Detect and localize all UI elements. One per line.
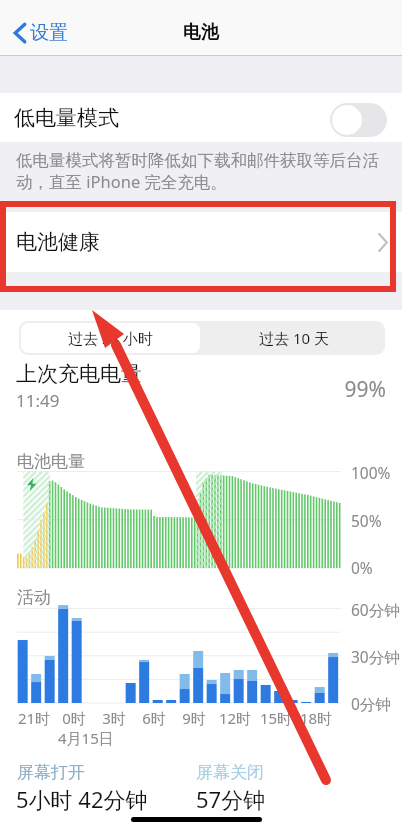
staticText: 屏幕打开: [17, 762, 85, 783]
staticText: 低电量模式将暂时降低如下载和邮件获取等后台活: [16, 150, 379, 171]
staticText: 电池: [183, 21, 219, 44]
staticText: 57分钟: [196, 784, 266, 814]
staticText: 9时: [164, 708, 224, 728]
staticText: 0时: [44, 708, 104, 728]
staticText: 12时: [205, 708, 265, 728]
staticText: 15时: [246, 708, 306, 728]
staticText: 0%: [351, 557, 373, 578]
staticText: 5小时 42分钟: [16, 784, 148, 814]
staticText: 6时: [124, 708, 184, 728]
staticText: 99%: [300, 375, 386, 404]
staticText: 上次充电电量: [16, 361, 142, 387]
button[interactable]: 低电量模式: [0, 93, 402, 142]
staticText: 低电量模式: [14, 105, 119, 131]
staticText: 0分钟: [351, 693, 391, 714]
staticText: 3时: [84, 708, 144, 728]
staticText: 过去 24 小时: [68, 328, 153, 348]
staticText: 过去 10 天: [259, 328, 329, 348]
staticText: 21时: [4, 708, 64, 728]
staticText: 设置: [30, 21, 68, 45]
staticText: 100%: [351, 462, 391, 483]
staticText: 4月15日: [58, 728, 114, 748]
staticText: 动，直至 iPhone 完全充电。: [16, 170, 228, 193]
button[interactable]: 过去 10 天: [202, 321, 385, 355]
staticText: 30分钟: [351, 646, 400, 667]
staticText: 屏幕关闭: [196, 762, 264, 783]
button[interactable]: 过去 24 小时: [21, 323, 200, 353]
button[interactable]: 低电量模式开关: [330, 103, 387, 137]
staticText: 50%: [351, 510, 382, 531]
button[interactable]: 电池健康: [0, 212, 402, 272]
staticText: 11:49: [16, 389, 60, 412]
staticText: 电池电量: [17, 451, 85, 472]
button[interactable]: 返回设置: [13, 21, 68, 45]
staticText: 活动: [17, 587, 51, 608]
staticText: 60分钟: [351, 599, 400, 620]
staticText: 18时: [286, 708, 346, 728]
staticText: 电池健康: [16, 229, 100, 255]
